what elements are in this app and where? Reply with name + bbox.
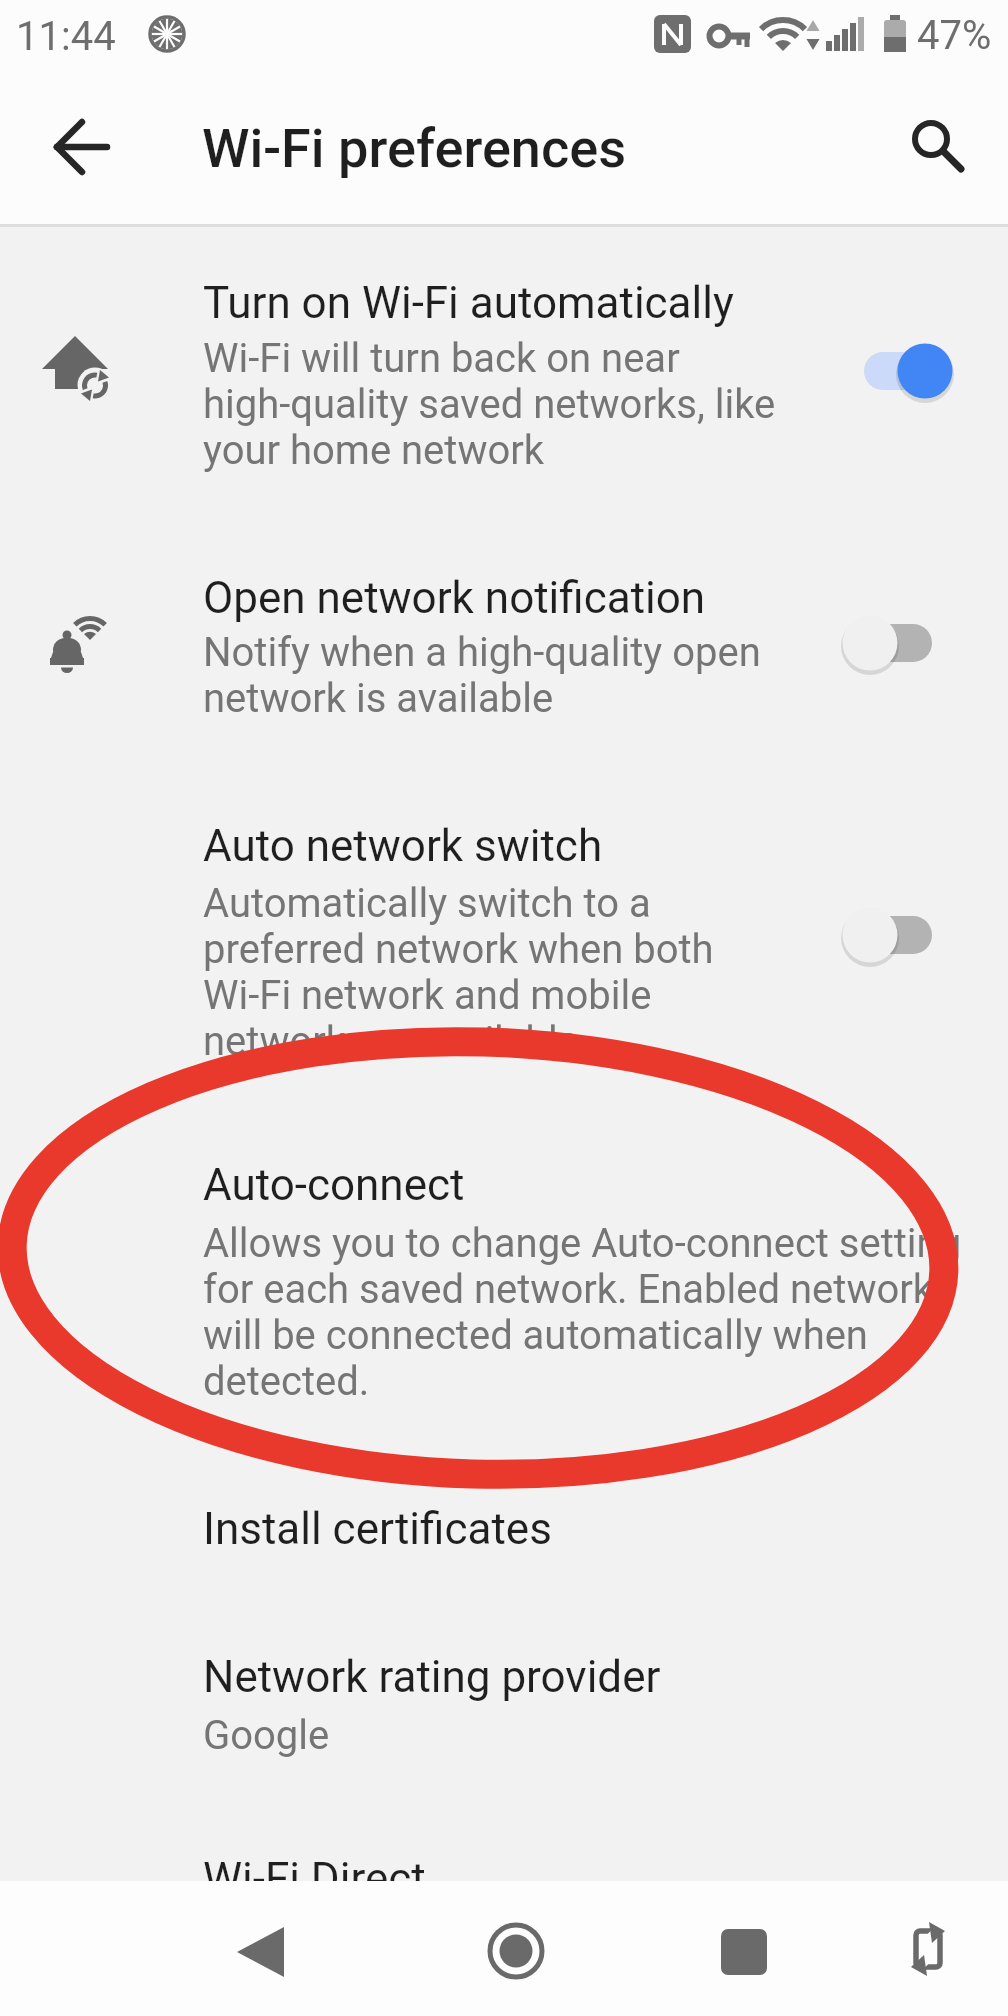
button[interactable]: Network rating provider <box>0 1620 1008 1770</box>
staticText: Wi-Fi Direct <box>203 1853 426 1881</box>
button[interactable]: Install certificates <box>0 1460 1008 1580</box>
staticText: Open network notification <box>203 572 706 624</box>
staticText: Auto network switch <box>203 820 603 872</box>
button[interactable]: Auto network switch <box>0 790 1008 1070</box>
button[interactable]: Wi-Fi Direct <box>0 1820 1008 1881</box>
button[interactable] <box>215 1908 305 1998</box>
button[interactable]: Turn on Wi-Fi automatically <box>0 244 1008 500</box>
staticText: Allows you to change Auto-connect settin… <box>203 1220 962 1405</box>
staticText: Wi-Fi preferences <box>202 117 627 180</box>
button[interactable]: Auto-connect <box>0 1130 1008 1420</box>
button[interactable] <box>885 1908 975 1998</box>
staticText: Install certificates <box>203 1503 552 1555</box>
button[interactable]: Open network notification <box>0 540 1008 740</box>
button[interactable] <box>471 1908 561 1998</box>
button[interactable] <box>895 105 985 185</box>
staticText: Automatically switch to a preferred netw… <box>203 880 714 1065</box>
button[interactable] <box>699 1908 789 1998</box>
button[interactable] <box>30 112 130 182</box>
staticText: Google <box>203 1712 330 1759</box>
staticText: Turn on Wi-Fi automatically <box>203 277 734 329</box>
staticText: Network rating provider <box>203 1651 661 1703</box>
staticText: Wi-Fi will turn back on near high-qualit… <box>203 335 776 474</box>
staticText: Auto-connect <box>203 1159 465 1211</box>
staticText: 47% <box>917 12 992 59</box>
staticText: Notify when a high-quality open network … <box>203 629 761 722</box>
staticText: 11:44 <box>16 13 116 60</box>
